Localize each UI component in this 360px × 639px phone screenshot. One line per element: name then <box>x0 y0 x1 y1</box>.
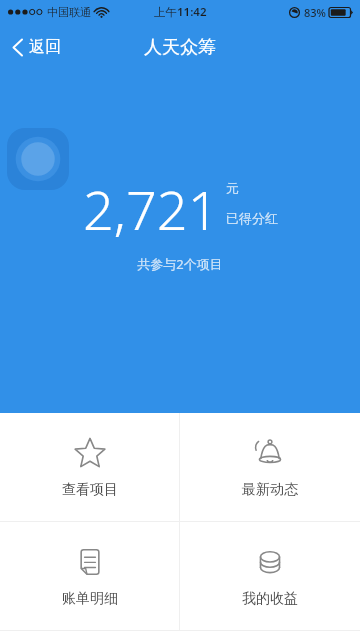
staticText: 元 <box>226 180 239 196</box>
button[interactable]: 账单明细 <box>0 522 179 630</box>
staticText: 83% <box>304 5 326 20</box>
button[interactable]: 我的收益 <box>180 522 360 630</box>
staticText: 中国联通 <box>47 5 91 19</box>
staticText: 账单明细 <box>62 590 118 608</box>
staticText: 我的收益 <box>242 590 298 608</box>
staticText: 已得分红 <box>226 210 278 226</box>
staticText: 共参与2个项目 <box>137 255 223 273</box>
staticText: 查看项目 <box>62 481 118 499</box>
staticText: 上午11:42 <box>154 4 207 20</box>
button[interactable]: 查看项目 <box>0 413 179 521</box>
staticText: 人天众筹 <box>144 36 216 59</box>
staticText: 返回 <box>29 37 61 57</box>
button[interactable]: 最新动态 <box>180 413 360 521</box>
staticText: 2,721 <box>83 172 219 246</box>
button[interactable]: 返回 <box>0 24 75 70</box>
staticText: 最新动态 <box>242 481 298 499</box>
